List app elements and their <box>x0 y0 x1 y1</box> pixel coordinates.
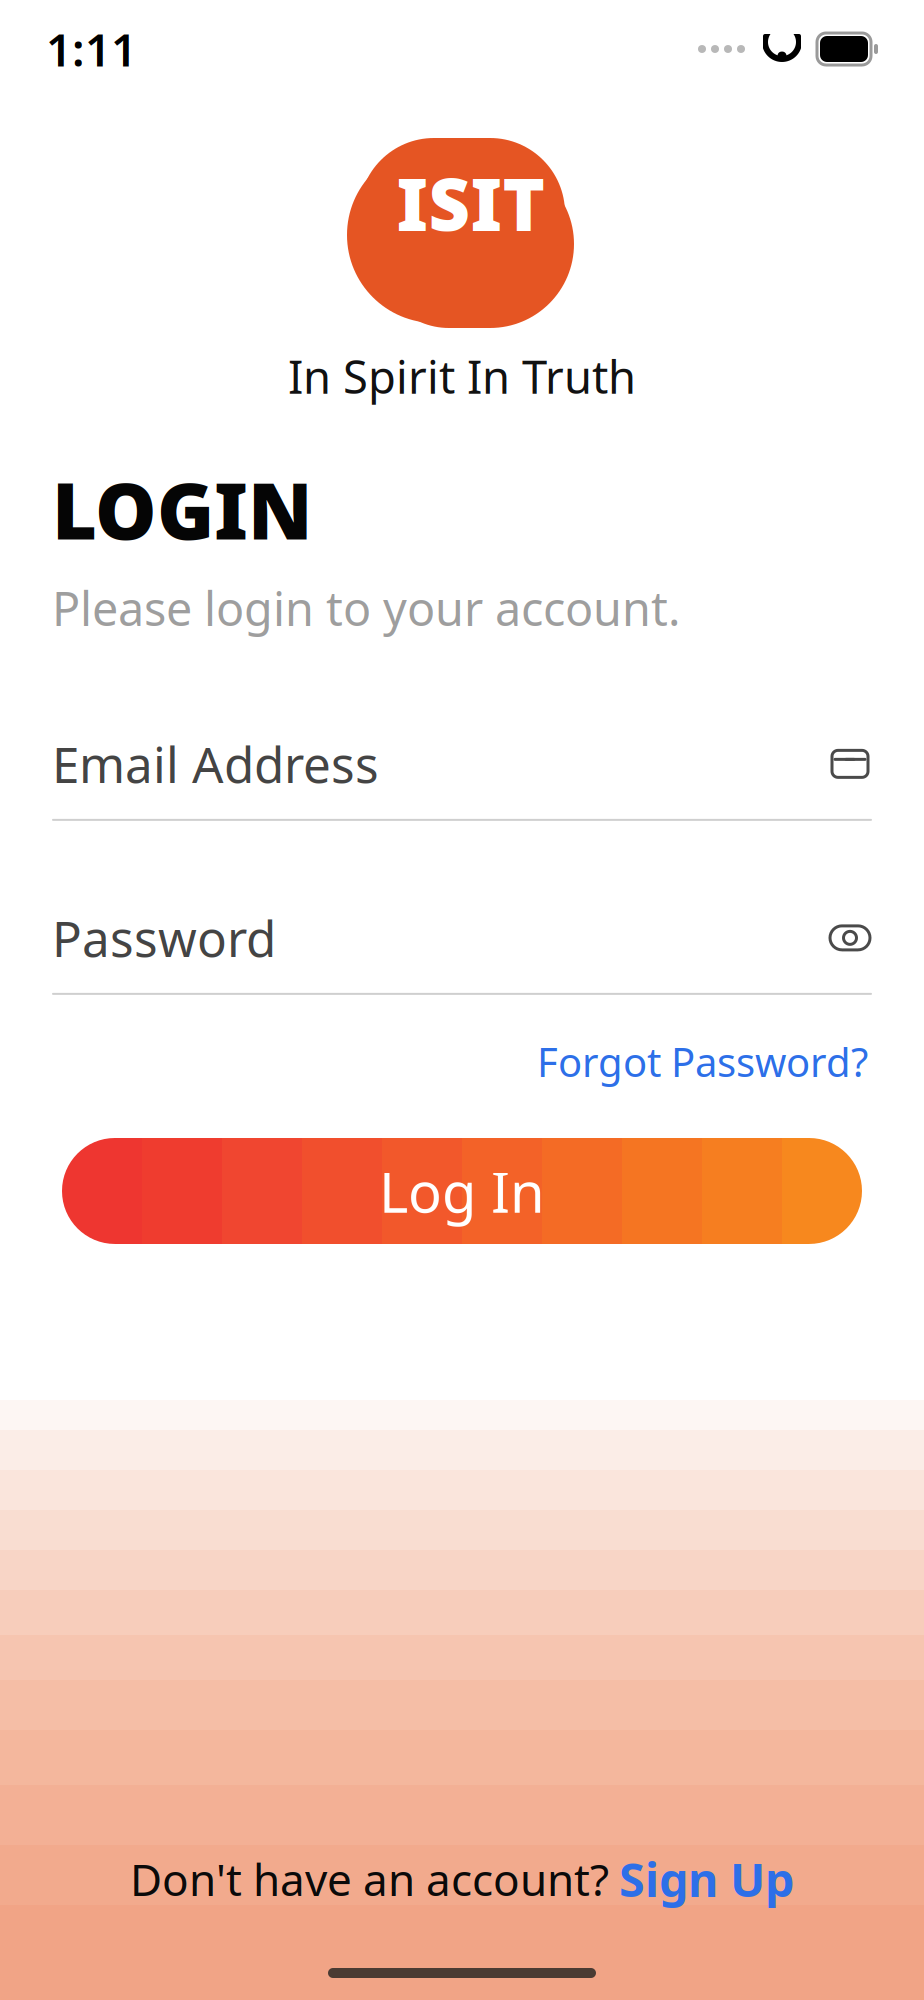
staticText: In Spirit In Truth <box>288 346 636 406</box>
button[interactable]: Email Address <box>0 735 924 821</box>
staticText: Please login to your account. <box>52 577 681 639</box>
staticText: Email Address <box>52 731 379 797</box>
staticText: ISIT <box>396 155 545 251</box>
button[interactable]: Password <box>0 909 924 995</box>
button[interactable]: Don't have an account? <box>130 1848 794 1910</box>
staticText: Sign Up <box>619 1848 794 1910</box>
staticText: LOGIN <box>52 458 312 561</box>
staticText: 1:11 <box>46 19 137 79</box>
button[interactable]: Log In <box>62 1138 862 1244</box>
staticText: Forgot Password? <box>537 1035 868 1088</box>
staticText: Don't have an account? <box>130 1850 609 1908</box>
button[interactable]: Forgot Password? <box>537 1035 868 1088</box>
staticText: Password <box>52 905 276 971</box>
staticText: Log In <box>379 1154 545 1228</box>
